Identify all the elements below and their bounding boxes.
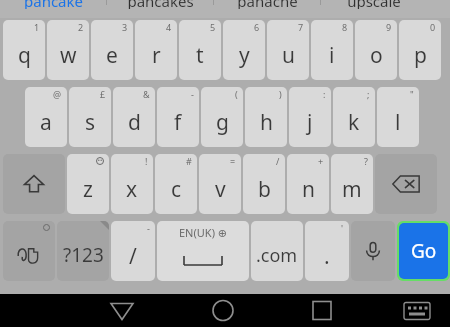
button[interactable]: -: [111, 221, 155, 281]
button[interactable]: z: [67, 154, 109, 214]
button[interactable]: ": [377, 87, 419, 147]
staticText: 4: [166, 21, 172, 33]
staticText: panache: [237, 0, 298, 9]
staticText: ): [279, 88, 282, 100]
staticText: u: [282, 41, 295, 70]
button[interactable]: Backspace: [375, 154, 437, 214]
button[interactable]: 3: [91, 20, 133, 80]
button[interactable]: Handwriting input: [3, 221, 55, 281]
staticText: x: [126, 175, 138, 204]
button[interactable]: -: [157, 87, 199, 147]
staticText: p: [414, 41, 427, 70]
staticText: 7: [298, 21, 304, 33]
staticText: e: [106, 41, 118, 70]
button[interactable]: Shift: [3, 154, 65, 214]
staticText: ': [341, 222, 344, 234]
staticText: £: [100, 88, 106, 100]
staticText: 9: [386, 21, 392, 33]
button[interactable]: ;: [333, 87, 375, 147]
staticText: (: [235, 88, 238, 100]
staticText: w: [60, 41, 77, 70]
staticText: v: [215, 175, 226, 204]
staticText: -: [147, 222, 150, 234]
staticText: h: [260, 108, 273, 137]
staticText: y: [239, 41, 250, 70]
staticText: 5: [210, 21, 216, 33]
button[interactable]: ?123: [57, 221, 109, 281]
staticText: =: [230, 155, 236, 167]
staticText: /: [276, 155, 280, 167]
staticText: ;: [367, 88, 370, 100]
button[interactable]: =: [199, 154, 241, 214]
staticText: n: [302, 175, 315, 204]
staticText: +: [318, 155, 324, 167]
button[interactable]: 4: [135, 20, 177, 80]
button[interactable]: 6: [223, 20, 265, 80]
staticText: upscale: [347, 0, 401, 9]
button[interactable]: @: [25, 87, 67, 147]
staticText: i: [329, 41, 335, 70]
button[interactable]: ': [305, 221, 349, 281]
button[interactable]: 7: [267, 20, 309, 80]
staticText: a: [40, 108, 52, 137]
button[interactable]: 2: [47, 20, 89, 80]
button[interactable]: Home: [205, 294, 241, 327]
button[interactable]: !: [111, 154, 153, 214]
staticText: ?123: [63, 242, 104, 268]
button[interactable]: 1: [3, 20, 45, 80]
staticText: s: [85, 108, 96, 137]
button[interactable]: 5: [179, 20, 221, 80]
staticText: EN(UK) ⊕: [179, 225, 228, 240]
staticText: r: [152, 41, 161, 70]
button[interactable]: :: [289, 87, 331, 147]
button[interactable]: 0: [399, 20, 441, 80]
button[interactable]: Go: [399, 223, 448, 279]
staticText: &: [143, 88, 150, 100]
staticText: f: [174, 108, 182, 137]
staticText: b: [258, 175, 271, 204]
staticText: -: [191, 88, 194, 100]
staticText: c: [171, 175, 182, 204]
button[interactable]: 8: [311, 20, 353, 80]
staticText: pancakes: [127, 0, 194, 9]
staticText: #: [186, 155, 192, 167]
button[interactable]: ): [245, 87, 287, 147]
button[interactable]: .com: [251, 221, 303, 281]
staticText: /: [129, 242, 137, 271]
button[interactable]: panache: [214, 0, 320, 9]
staticText: d: [128, 108, 141, 137]
button[interactable]: Switch keyboard: [399, 294, 435, 327]
staticText: .: [324, 242, 330, 271]
button[interactable]: #: [155, 154, 197, 214]
staticText: z: [83, 175, 93, 204]
button[interactable]: £: [69, 87, 111, 147]
button[interactable]: /: [243, 154, 285, 214]
staticText: 8: [342, 21, 348, 33]
staticText: 2: [78, 21, 84, 33]
button[interactable]: ?: [331, 154, 373, 214]
button[interactable]: pancake: [0, 0, 106, 9]
staticText: !: [145, 155, 148, 167]
staticText: j: [307, 108, 313, 137]
button[interactable]: Recent apps: [304, 294, 340, 327]
button[interactable]: pancakes: [107, 0, 213, 9]
button[interactable]: upscale: [321, 0, 427, 9]
staticText: k: [348, 108, 360, 137]
button[interactable]: +: [287, 154, 329, 214]
button[interactable]: Space: [157, 221, 249, 281]
staticText: 6: [254, 21, 260, 33]
staticText: l: [395, 108, 401, 137]
staticText: @: [53, 88, 62, 100]
button[interactable]: Back: [104, 294, 140, 327]
staticText: ": [410, 88, 414, 100]
button[interactable]: Voice input: [351, 221, 395, 281]
button[interactable]: 9: [355, 20, 397, 80]
staticText: 1: [34, 21, 40, 33]
staticText: q: [18, 41, 31, 70]
button[interactable]: &: [113, 87, 155, 147]
staticText: ?: [364, 155, 368, 167]
button[interactable]: (: [201, 87, 243, 147]
staticText: t: [196, 41, 204, 70]
staticText: g: [216, 108, 229, 137]
staticText: pancake: [24, 0, 83, 9]
